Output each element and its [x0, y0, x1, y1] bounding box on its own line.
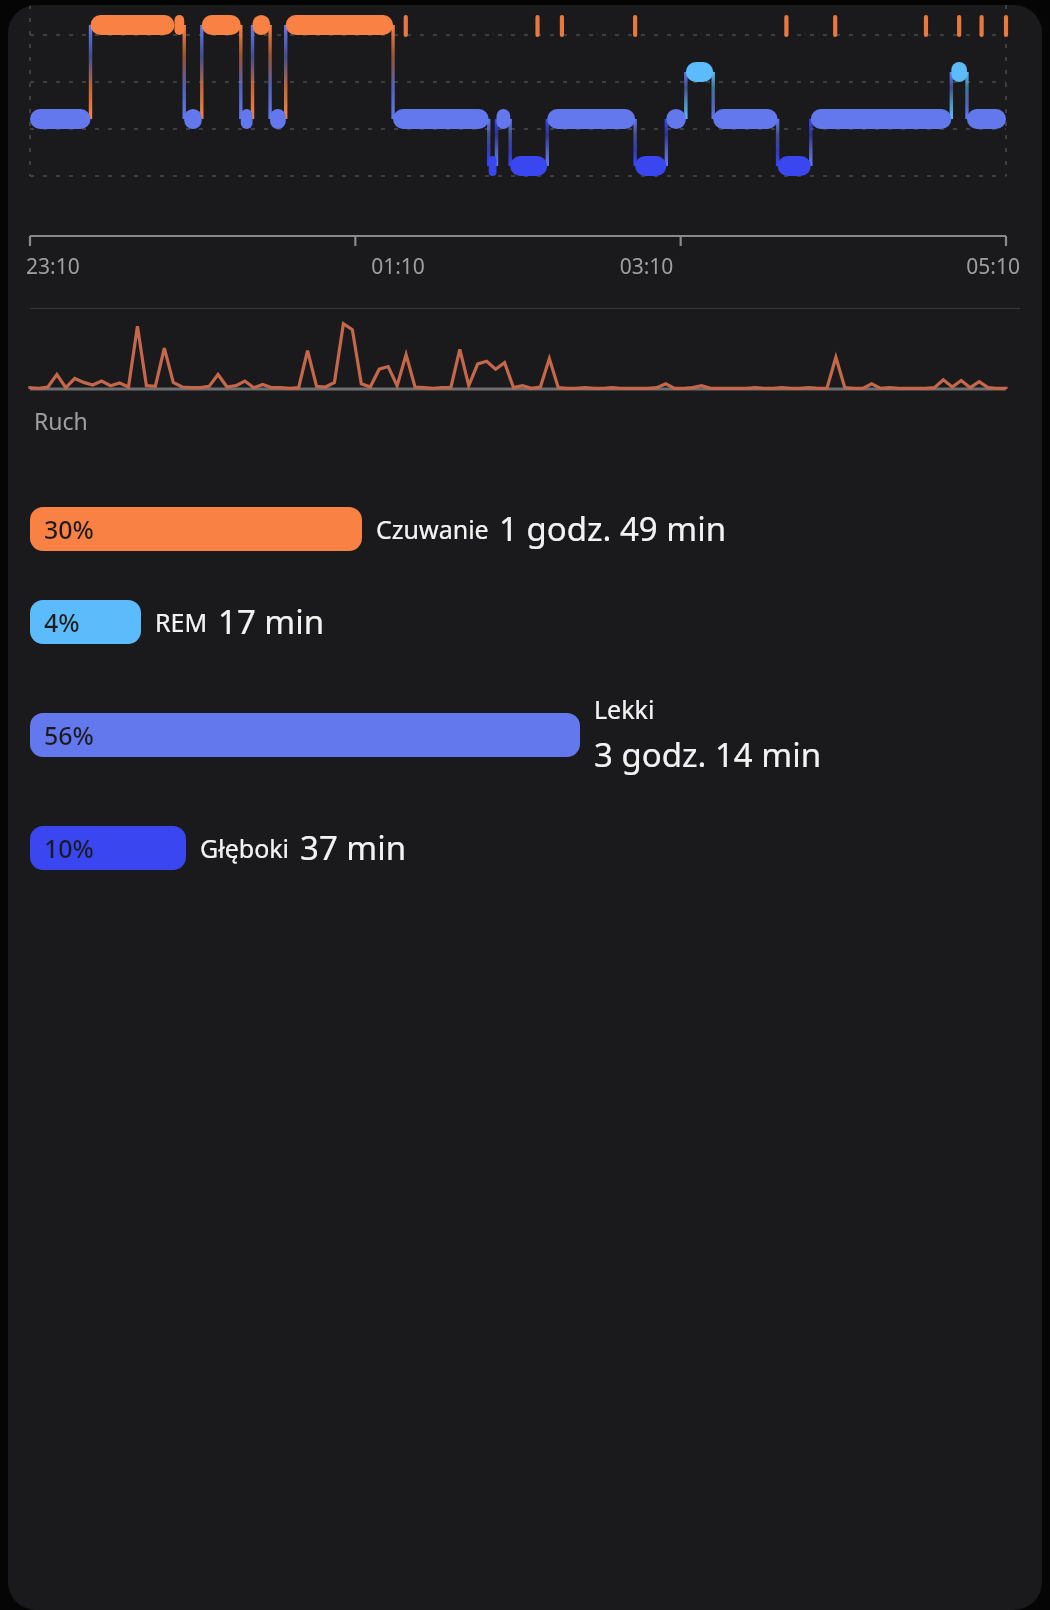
button[interactable]: 10%	[30, 825, 1020, 870]
staticText: 01:10	[274, 252, 522, 281]
button[interactable]: Wykres ruchu	[8, 309, 1042, 397]
staticText: 56%	[44, 718, 94, 752]
staticText: 37 min	[300, 825, 407, 870]
staticText: 03:10	[522, 252, 771, 281]
staticText: 10%	[44, 831, 94, 865]
staticText: Ruch	[34, 405, 88, 436]
staticText: 4%	[44, 605, 80, 639]
staticText: 1 godz. 49 min	[499, 506, 727, 551]
button[interactable]: 4%	[30, 599, 1020, 644]
staticText: 30%	[44, 512, 94, 546]
button[interactable]: 56%	[30, 692, 1020, 777]
staticText: Lekki	[594, 692, 655, 726]
button[interactable]: 30%	[30, 506, 1020, 551]
staticText: Czuwanie	[376, 512, 489, 546]
staticText: 17 min	[218, 599, 325, 644]
button[interactable]: Wykres faz snu	[8, 5, 1042, 230]
staticText: 05:10	[771, 252, 1020, 281]
staticText: REM	[155, 605, 208, 639]
staticText: Głęboki	[200, 831, 290, 865]
staticText: 3 godz. 14 min	[594, 732, 822, 777]
staticText: 23:10	[26, 252, 274, 281]
